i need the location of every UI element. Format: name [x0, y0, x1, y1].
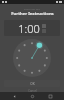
- button[interactable]: Home: [28, 92, 36, 100]
- button[interactable]: 1:00: [4, 20, 60, 36]
- button[interactable]: OK: [4, 80, 60, 87]
- staticText: DATE NOT SET: [24, 7, 40, 10]
- staticText: OK: [30, 82, 35, 86]
- staticText: Further Instructions: [11, 11, 54, 17]
- button[interactable]: Clock dial: [13, 39, 51, 77]
- button[interactable]: Back: [10, 92, 18, 100]
- staticText: Cancel: [28, 89, 37, 92]
- button[interactable]: Recents: [46, 92, 54, 100]
- staticText: 1:00: [18, 21, 40, 36]
